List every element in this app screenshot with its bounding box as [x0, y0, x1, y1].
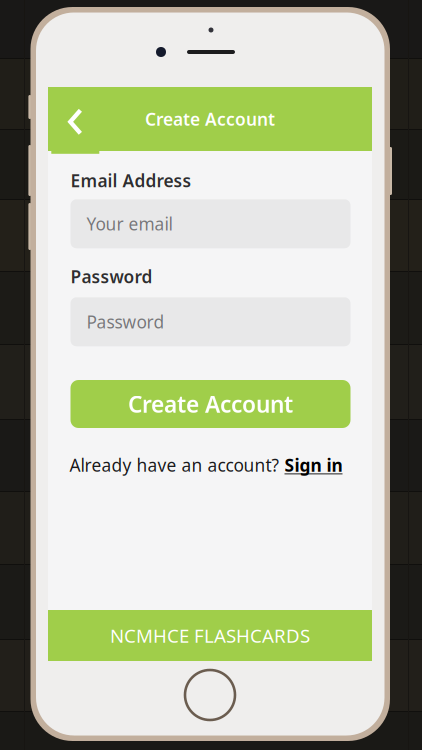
button[interactable]: Back: [51, 90, 99, 154]
button[interactable]: NCMHCE FLASHCARDS: [48, 610, 372, 661]
button[interactable]: Create Account: [70, 380, 350, 428]
staticText: Email Address: [70, 169, 191, 192]
staticText: Your email: [86, 212, 172, 235]
button[interactable]: Sign in: [284, 453, 342, 476]
staticText: Create Account: [145, 107, 275, 130]
staticText: Password: [70, 265, 152, 288]
staticText: Create Account: [128, 389, 293, 419]
staticText: Sign in: [284, 453, 342, 476]
staticText: NCMHCE FLASHCARDS: [110, 623, 310, 648]
staticText: Password: [86, 310, 164, 333]
staticText: Already have an account?: [69, 453, 284, 476]
